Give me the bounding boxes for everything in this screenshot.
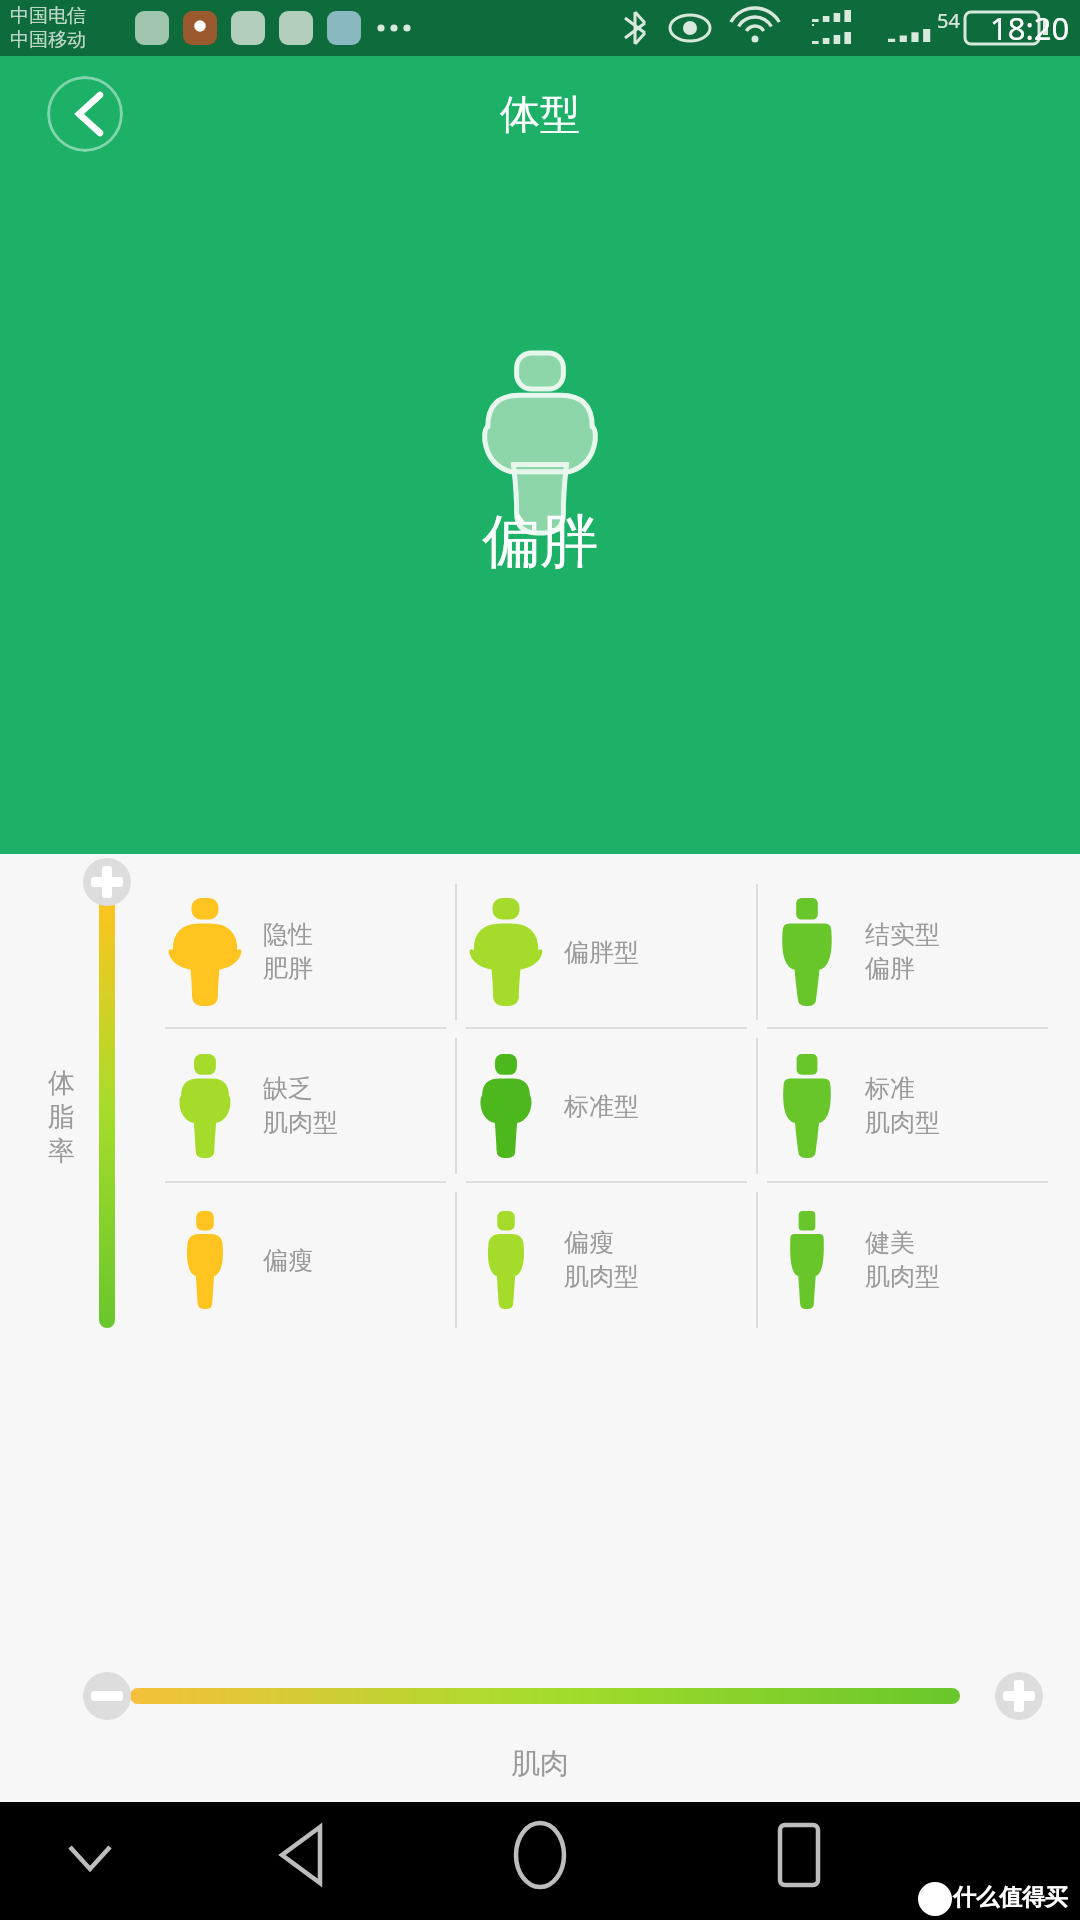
button[interactable]: Increase muscle (995, 1672, 1043, 1720)
staticText: 肌肉 (511, 1745, 569, 1782)
staticText: 什么值得买 (953, 1883, 1068, 1912)
button[interactable]: 缺乏 肌肉型 (155, 1030, 456, 1182)
staticText: 隐性 肥胖 (263, 919, 313, 985)
staticText: 标准 肌肉型 (865, 1073, 940, 1139)
staticText: 脂 (48, 1100, 75, 1134)
button[interactable]: 标准 肌肉型 (757, 1030, 1058, 1182)
staticText: 健美 肌肉型 (865, 1227, 940, 1293)
staticText: 54 (937, 7, 960, 34)
staticText: 结实型 偏胖 (865, 919, 940, 985)
button[interactable]: 偏胖型 (456, 876, 757, 1028)
staticText: 率 (48, 1134, 75, 1168)
button[interactable]: 结实型 偏胖 (757, 876, 1058, 1028)
button[interactable]: 偏瘦 肌肉型 (456, 1184, 757, 1336)
button[interactable]: Decrease muscle (83, 1672, 131, 1720)
button[interactable]: 隐性 肥胖 (155, 876, 456, 1028)
button[interactable]: 健美 肌肉型 (757, 1184, 1058, 1336)
staticText: 标准型 (564, 1091, 639, 1122)
staticText: 18:20 (990, 7, 1070, 49)
staticText: 体型 (500, 89, 580, 139)
staticText: 缺乏 肌肉型 (263, 1073, 338, 1139)
button[interactable]: 标准型 (456, 1030, 757, 1182)
button[interactable]: Back (47, 76, 123, 152)
staticText: 中国移动 (10, 28, 86, 52)
button[interactable]: Increase body fat (83, 858, 131, 906)
staticText: 偏瘦 (263, 1245, 313, 1276)
staticText: 体 (48, 1066, 75, 1100)
staticText: 偏胖 (482, 505, 598, 578)
staticText: 偏瘦 肌肉型 (564, 1227, 639, 1293)
staticText: 中国电信 (10, 4, 86, 28)
button[interactable]: 偏瘦 (155, 1184, 456, 1336)
staticText: 偏胖型 (564, 937, 639, 968)
